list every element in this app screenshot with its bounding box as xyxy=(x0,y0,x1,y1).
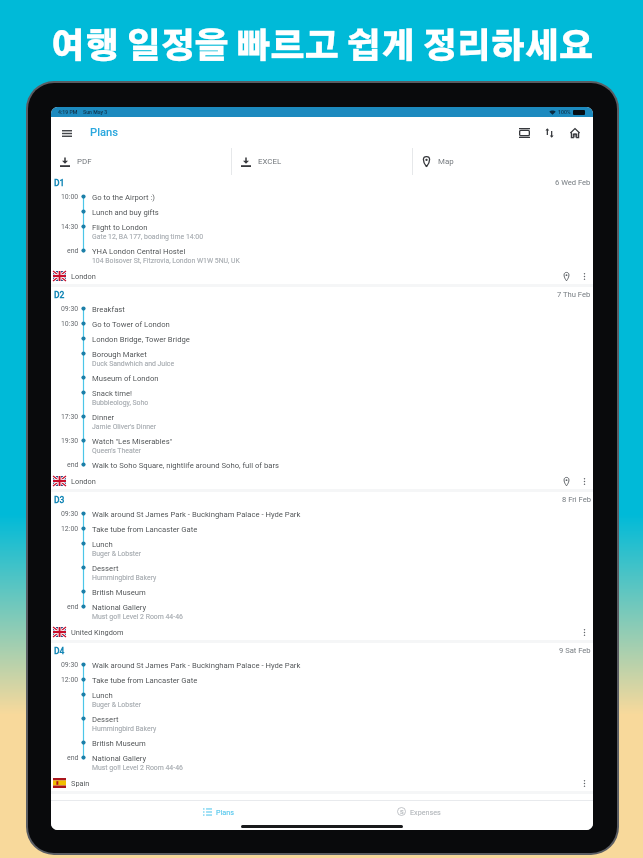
button[interactable]: 10:30 xyxy=(51,317,593,332)
button[interactable]: London xyxy=(51,268,593,284)
staticText: 9 Sat Feb xyxy=(559,646,591,655)
button[interactable]: Lunch xyxy=(51,537,593,561)
button[interactable]: Lunch and buy gifts xyxy=(51,205,593,220)
staticText: 10:00 xyxy=(61,193,79,201)
staticText: British Museum xyxy=(92,588,146,597)
staticText: Lunch xyxy=(92,691,113,700)
staticText: Sun May 3 xyxy=(83,109,108,115)
staticText: London Bridge, Tower Bridge xyxy=(92,335,190,344)
button[interactable]: More options xyxy=(578,626,591,639)
staticText: Go to the Airport :) xyxy=(92,193,155,202)
staticText: Map xyxy=(438,157,454,166)
button[interactable]: PDF xyxy=(51,148,231,175)
button[interactable]: Menu xyxy=(58,124,76,142)
button[interactable]: Museum of London xyxy=(51,371,593,386)
button[interactable]: British Museum xyxy=(51,585,593,600)
button[interactable]: 09:30 xyxy=(51,658,593,673)
staticText: 100% xyxy=(558,109,571,115)
button[interactable]: More options xyxy=(578,270,591,283)
staticText: Expenses xyxy=(410,808,441,816)
staticText: D4 xyxy=(54,646,65,656)
staticText: Queen's Theater xyxy=(92,447,141,455)
staticText: 17:30 xyxy=(61,413,79,421)
staticText: Hummingbird Bakery xyxy=(92,725,157,733)
staticText: Spain xyxy=(71,779,90,788)
button[interactable]: end xyxy=(51,600,593,624)
staticText: 19:30 xyxy=(61,437,79,445)
button[interactable]: Snack time! xyxy=(51,386,593,410)
staticText: D3 xyxy=(54,495,65,505)
button[interactable]: end xyxy=(51,751,593,775)
staticText: Plans xyxy=(216,808,234,816)
staticText: 여행 일정을 빠르고 쉽게 정리하세요 xyxy=(50,31,593,65)
button[interactable]: Map location xyxy=(560,270,573,283)
staticText: EXCEL xyxy=(258,157,282,166)
button[interactable]: More options xyxy=(578,777,591,790)
staticText: Jamie Oliver's Dinner xyxy=(92,423,157,431)
button[interactable]: Map xyxy=(413,148,593,175)
staticText: Dessert xyxy=(92,564,119,573)
staticText: Snack time! xyxy=(92,389,133,398)
staticText: National Gallery xyxy=(92,603,147,612)
staticText: Lunch xyxy=(92,540,113,549)
button[interactable]: S xyxy=(391,801,447,822)
button[interactable]: Sort xyxy=(539,123,559,143)
button[interactable]: 09:30 xyxy=(51,302,593,317)
staticText: British Museum xyxy=(92,739,146,748)
staticText: YHA London Central Hostel xyxy=(92,247,186,256)
staticText: Go to Tower of London xyxy=(92,320,170,329)
button[interactable]: 10:00 xyxy=(51,190,593,205)
button[interactable]: Map location xyxy=(560,475,573,488)
button[interactable]: British Museum xyxy=(51,736,593,751)
staticText: 104 Boisover St, Fitzrovia, London W1W 5… xyxy=(92,257,240,265)
button[interactable]: United Kingdom xyxy=(51,624,593,640)
button[interactable]: 19:30 xyxy=(51,434,593,458)
staticText: United Kingdom xyxy=(71,628,124,637)
staticText: 4:19 PM xyxy=(58,109,78,115)
button[interactable]: Plans xyxy=(197,801,240,822)
button[interactable]: Card view xyxy=(514,123,534,143)
staticText: 7 Thu Feb xyxy=(557,290,591,299)
button[interactable]: London Bridge, Tower Bridge xyxy=(51,332,593,347)
button[interactable]: Home xyxy=(565,123,585,143)
staticText: S xyxy=(400,808,404,815)
staticText: Plans xyxy=(90,126,119,139)
staticText: Gate 12, BA 177, boading time 14:00 xyxy=(92,233,204,241)
staticText: 10:30 xyxy=(61,320,79,328)
button[interactable]: EXCEL xyxy=(232,148,412,175)
button[interactable]: end xyxy=(51,458,593,473)
staticText: London xyxy=(71,477,96,486)
staticText: Watch "Les Miserables" xyxy=(92,437,173,446)
staticText: Must go!! Level 2 Room 44-46 xyxy=(92,764,183,772)
button[interactable]: 09:30 xyxy=(51,507,593,522)
staticText: 12:00 xyxy=(61,676,79,684)
button[interactable]: Spain xyxy=(51,775,593,791)
staticText: Must go!! Level 2 Room 44-46 xyxy=(92,613,183,621)
button[interactable]: 12:00 xyxy=(51,673,593,688)
staticText: Lunch and buy gifts xyxy=(92,208,159,217)
button[interactable]: 12:00 xyxy=(51,522,593,537)
button[interactable]: Dessert xyxy=(51,712,593,736)
staticText: Take tube from Lancaster Gate xyxy=(92,676,198,685)
staticText: 09:30 xyxy=(61,510,79,518)
button[interactable]: More options xyxy=(578,475,591,488)
button[interactable]: end xyxy=(51,244,593,268)
button[interactable]: London xyxy=(51,473,593,489)
staticText: PDF xyxy=(77,157,92,166)
staticText: Take tube from Lancaster Gate xyxy=(92,525,198,534)
button[interactable]: 17:30 xyxy=(51,410,593,434)
staticText: 12:00 xyxy=(61,525,79,533)
staticText: Dessert xyxy=(92,715,119,724)
button[interactable]: Lunch xyxy=(51,688,593,712)
staticText: Borough Market xyxy=(92,350,147,359)
staticText: Flight to London xyxy=(92,223,148,232)
staticText: London xyxy=(71,272,96,281)
button[interactable]: Borough Market xyxy=(51,347,593,371)
staticText: 8 Fri Feb xyxy=(562,495,591,504)
button[interactable]: Dessert xyxy=(51,561,593,585)
button[interactable]: 14:30 xyxy=(51,220,593,244)
staticText: 09:30 xyxy=(61,305,79,313)
staticText: Duck Sandwhich and Juice xyxy=(92,360,175,368)
staticText: Walk around St James Park - Buckingham P… xyxy=(92,661,301,670)
staticText: National Gallery xyxy=(92,754,147,763)
